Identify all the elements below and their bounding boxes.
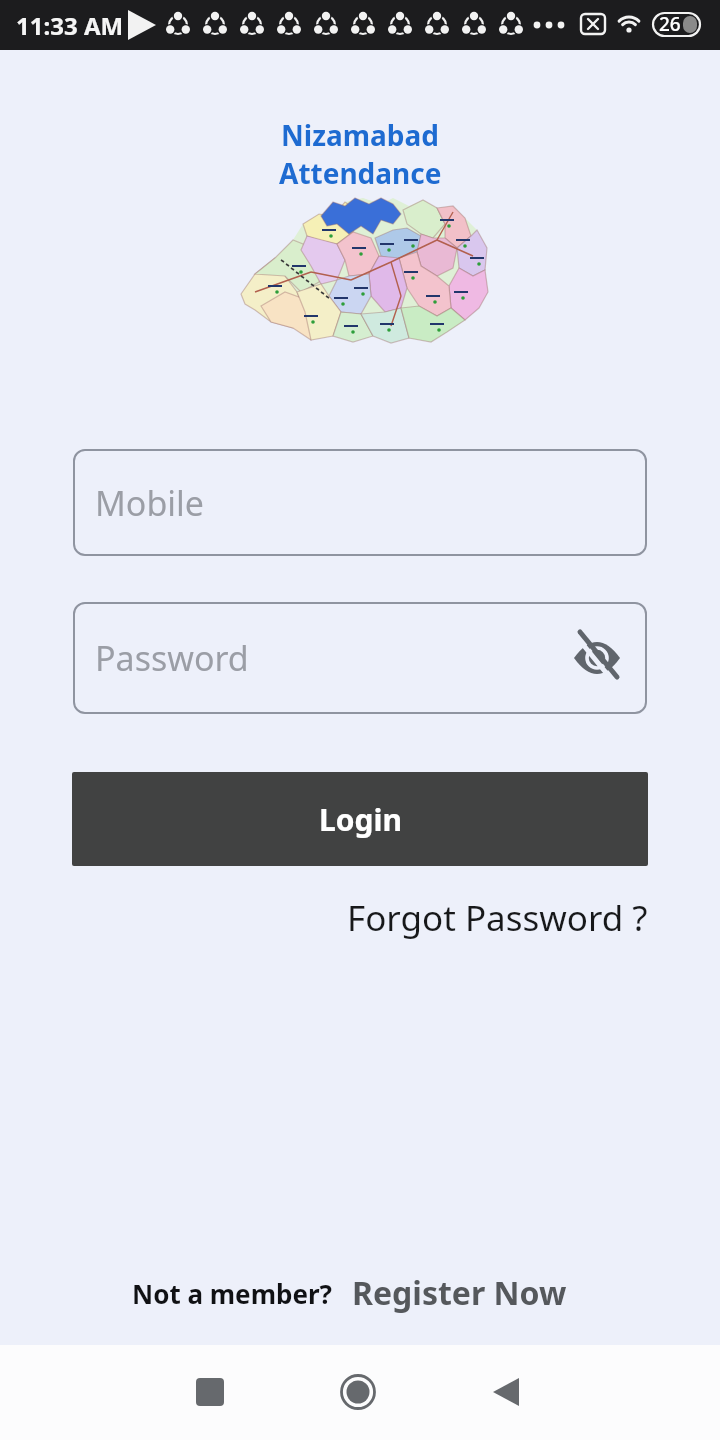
- button[interactable]: Mobile: [73, 449, 647, 556]
- button[interactable]: Register Now: [352, 1271, 567, 1315]
- button[interactable]: [180, 1362, 240, 1422]
- button[interactable]: [573, 634, 621, 682]
- staticText: Mobile: [95, 480, 205, 526]
- staticText: Login: [319, 799, 402, 840]
- staticText: Password: [95, 635, 249, 681]
- staticText: 26: [659, 11, 681, 37]
- button[interactable]: Password: [73, 602, 647, 714]
- staticText: Not a member?: [132, 1276, 332, 1311]
- button[interactable]: [328, 1362, 388, 1422]
- staticText: 11:33 AM: [16, 9, 124, 42]
- staticText: Nizamabad: [281, 116, 439, 154]
- staticText: Attendance: [279, 154, 442, 192]
- button[interactable]: Forgot Password ?: [347, 894, 648, 942]
- button[interactable]: [476, 1362, 536, 1422]
- button[interactable]: Login: [72, 772, 648, 866]
